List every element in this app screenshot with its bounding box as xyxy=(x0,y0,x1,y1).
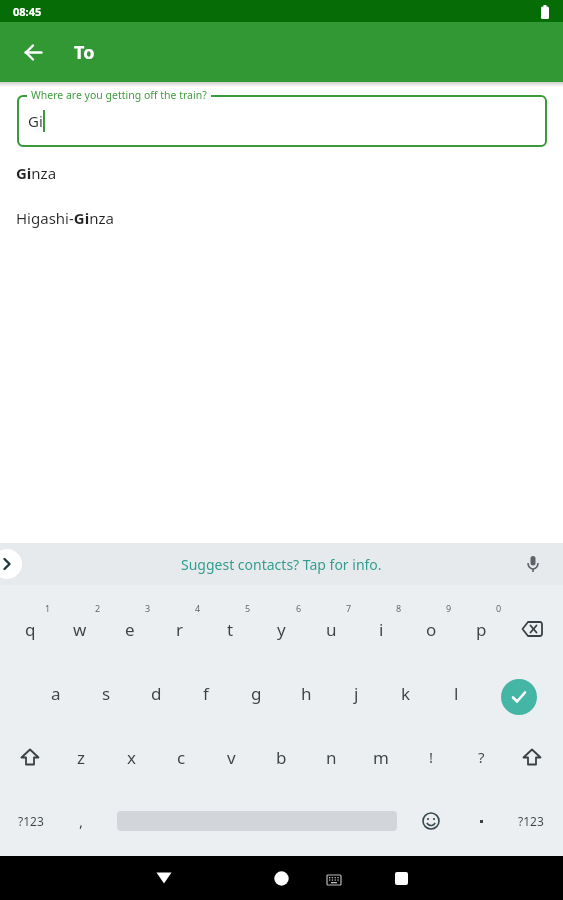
button[interactable] xyxy=(501,679,537,715)
button[interactable]: ? xyxy=(456,727,506,787)
button[interactable] xyxy=(16,35,50,69)
button[interactable]: f xyxy=(181,663,231,723)
button[interactable]: , xyxy=(56,791,106,851)
staticText: 0 xyxy=(496,602,502,614)
button[interactable] xyxy=(5,727,55,787)
staticText: o xyxy=(426,618,437,641)
button[interactable]: i xyxy=(356,599,406,659)
button[interactable]: w xyxy=(55,599,105,659)
staticText: d xyxy=(151,682,162,705)
button[interactable]: k xyxy=(381,663,431,723)
button[interactable]: u xyxy=(306,599,356,659)
staticText: h xyxy=(301,682,312,705)
staticText: y xyxy=(277,618,286,641)
staticText: t xyxy=(227,618,234,641)
staticText: ?123 xyxy=(18,813,44,829)
button[interactable] xyxy=(507,727,557,787)
staticText: n xyxy=(326,746,337,769)
button[interactable]: ! xyxy=(406,727,456,787)
button[interactable] xyxy=(518,549,548,579)
button[interactable]: v xyxy=(206,727,256,787)
staticText: To xyxy=(74,40,95,65)
staticText: c xyxy=(177,746,186,769)
button[interactable]: o xyxy=(406,599,456,659)
staticText: z xyxy=(77,746,85,769)
button[interactable]: a xyxy=(31,663,81,723)
staticText: 1 xyxy=(45,602,51,614)
staticText: q xyxy=(25,618,36,641)
button[interactable]: b xyxy=(256,727,306,787)
staticText: m xyxy=(373,746,389,769)
staticText: x xyxy=(127,746,136,769)
staticText: b xyxy=(276,746,287,769)
staticText: Where are you getting off the train? xyxy=(31,88,207,102)
button[interactable]: e xyxy=(105,599,155,659)
staticText: , xyxy=(79,811,84,831)
button[interactable]: ?123 xyxy=(6,791,56,851)
button[interactable] xyxy=(318,858,350,900)
button[interactable]: p xyxy=(456,599,506,659)
button[interactable] xyxy=(507,599,557,659)
staticText: w xyxy=(73,618,87,641)
staticText: Higashi-Ginza xyxy=(16,208,114,228)
staticText: 9 xyxy=(446,602,452,614)
staticText: e xyxy=(125,618,135,641)
staticText: p xyxy=(476,618,487,641)
button[interactable] xyxy=(257,856,305,900)
button[interactable]: l xyxy=(431,663,481,723)
staticText: f xyxy=(203,682,209,705)
staticText: i xyxy=(379,618,384,641)
staticText: 2 xyxy=(95,602,101,614)
button[interactable]: c xyxy=(156,727,206,787)
button[interactable] xyxy=(406,791,456,851)
button[interactable]: q xyxy=(5,599,55,659)
staticText: ! xyxy=(429,747,434,767)
staticText: 5 xyxy=(245,602,251,614)
button[interactable]: m xyxy=(356,727,406,787)
button[interactable] xyxy=(456,791,506,851)
staticText: 6 xyxy=(296,602,302,614)
staticText: j xyxy=(354,682,359,705)
button[interactable]: y xyxy=(256,599,306,659)
staticText: v xyxy=(227,746,236,769)
button[interactable] xyxy=(0,549,22,579)
staticText: r xyxy=(176,618,184,641)
staticText: 7 xyxy=(346,602,352,614)
staticText: Gi xyxy=(28,111,43,131)
staticText: g xyxy=(251,682,262,705)
button[interactable] xyxy=(377,856,425,900)
button[interactable]: ?123 xyxy=(506,791,556,851)
button[interactable]: j xyxy=(331,663,381,723)
staticText: l xyxy=(454,682,459,705)
staticText: 3 xyxy=(145,602,151,614)
button[interactable]: r xyxy=(155,599,205,659)
staticText: a xyxy=(51,682,61,705)
staticText: u xyxy=(326,618,337,641)
button[interactable]: n xyxy=(306,727,356,787)
button[interactable]: z xyxy=(56,727,106,787)
staticText: 8 xyxy=(396,602,402,614)
button[interactable]: t xyxy=(205,599,255,659)
staticText: ? xyxy=(478,747,485,767)
button[interactable]: d xyxy=(131,663,181,723)
button[interactable]: x xyxy=(106,727,156,787)
button[interactable]: g xyxy=(231,663,281,723)
button[interactable]: Ginza xyxy=(0,155,563,191)
button[interactable]: h xyxy=(281,663,331,723)
staticText: k xyxy=(401,682,411,705)
button[interactable]: Suggest contacts? Tap for info. xyxy=(0,543,563,585)
button[interactable]: Higashi-Ginza xyxy=(0,200,563,236)
staticText: ?123 xyxy=(518,813,544,829)
staticText: Suggest contacts? Tap for info. xyxy=(181,555,382,574)
button[interactable]: Gi xyxy=(17,95,547,147)
staticText: s xyxy=(102,682,111,705)
staticText: 08:45 xyxy=(13,4,42,19)
staticText: 4 xyxy=(195,602,201,614)
staticText: Ginza xyxy=(16,163,57,183)
button[interactable] xyxy=(140,856,188,900)
button[interactable]: s xyxy=(81,663,131,723)
